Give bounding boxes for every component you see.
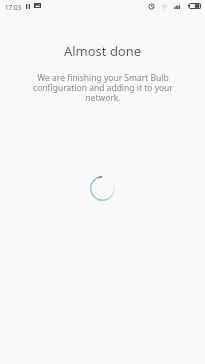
staticText: 17:03 bbox=[5, 3, 22, 12]
staticText: We are finishing your Smart Bulb configu… bbox=[28, 72, 178, 104]
other: Loading bbox=[90, 176, 115, 201]
staticText: Almost done bbox=[0, 42, 205, 60]
